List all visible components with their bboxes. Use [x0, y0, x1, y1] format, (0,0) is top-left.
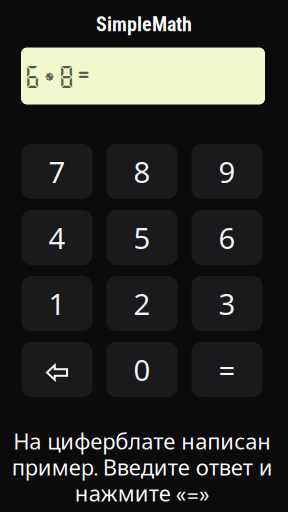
button[interactable]: 8: [106, 144, 177, 199]
button[interactable]: 9: [191, 144, 262, 199]
staticText: 0: [133, 350, 150, 389]
staticText: 1: [48, 284, 65, 323]
button[interactable]: =: [191, 342, 262, 397]
button[interactable]: 5: [106, 210, 177, 265]
staticText: На циферблате написан пример. Введите от…: [11, 426, 272, 508]
button[interactable]: 1: [21, 276, 92, 331]
button[interactable]: 6: [191, 210, 262, 265]
staticText: 7: [48, 152, 65, 191]
button[interactable]: 0: [106, 342, 177, 397]
staticText: 8: [133, 152, 150, 191]
staticText: 4: [48, 218, 65, 257]
button[interactable]: 4: [21, 210, 92, 265]
button[interactable]: 3: [191, 276, 262, 331]
staticText: 3: [218, 284, 235, 323]
staticText: 6*8=: [24, 62, 92, 90]
staticText: SimpleMath: [96, 13, 192, 36]
staticText: 2: [133, 284, 150, 323]
staticText: =: [218, 350, 235, 389]
staticText: 6: [218, 218, 235, 257]
button[interactable]: 7: [21, 144, 92, 199]
button[interactable]: 2: [106, 276, 177, 331]
staticText: 5: [133, 218, 150, 257]
button[interactable]: Backspace: [21, 342, 92, 397]
staticText: 9: [218, 152, 235, 191]
